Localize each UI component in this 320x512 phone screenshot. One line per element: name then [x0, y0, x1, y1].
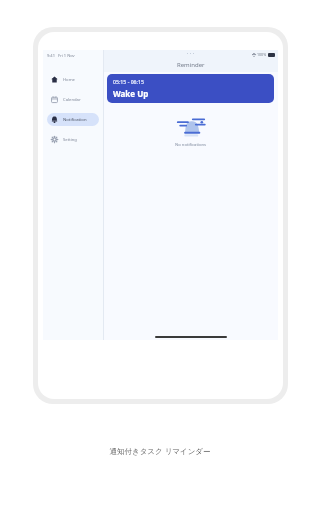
- button[interactable]: Setting: [47, 133, 99, 146]
- staticText: 9:41: [47, 53, 55, 58]
- staticText: Notification: [63, 117, 87, 123]
- staticText: Reminder: [177, 61, 205, 69]
- other: Calendar: [51, 96, 58, 103]
- staticText: Fri 1 Nov: [58, 53, 75, 58]
- staticText: Setting: [63, 137, 77, 143]
- staticText: Home: [63, 77, 75, 83]
- button[interactable]: Calendar: [47, 93, 99, 106]
- other: Notification: [51, 116, 58, 123]
- button[interactable]: Notification: [47, 113, 99, 126]
- staticText: 100%: [257, 52, 267, 57]
- staticText: Wake Up: [113, 88, 149, 99]
- other: Home: [51, 76, 58, 83]
- button[interactable]: 05:15 - 06:15: [107, 74, 274, 103]
- staticText: 05:15 - 06:15: [113, 78, 144, 85]
- staticText: 通知付きタスク リマインダー: [0, 446, 320, 456]
- button[interactable]: Home: [47, 73, 99, 86]
- staticText: Calendar: [63, 97, 81, 103]
- staticText: No notifications: [175, 142, 207, 148]
- other: Setting: [51, 136, 58, 143]
